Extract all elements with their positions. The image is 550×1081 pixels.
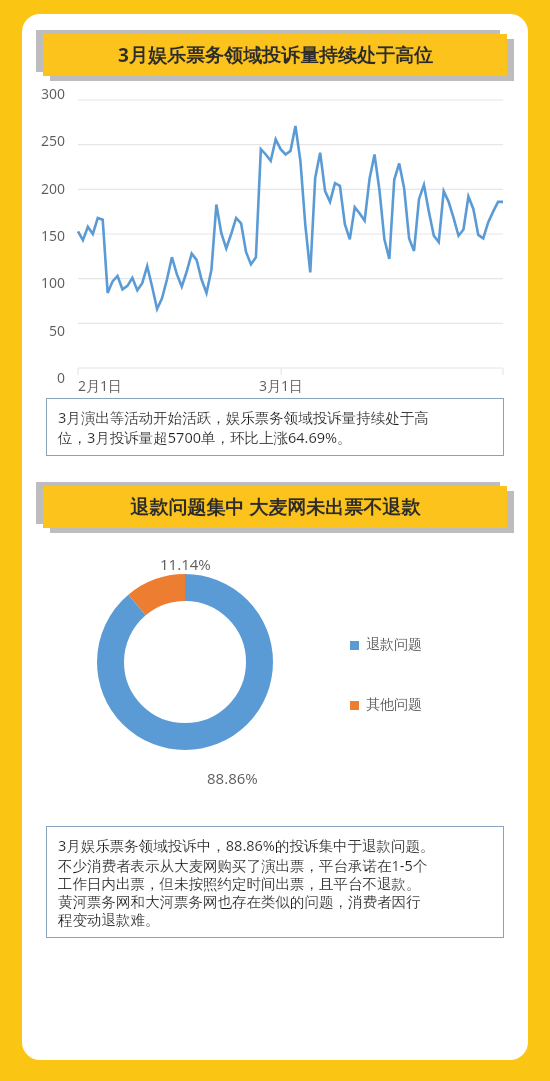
staticText: 0 xyxy=(57,368,66,384)
staticText: 150 xyxy=(41,226,66,245)
staticText: 程变动退款难。 xyxy=(58,911,160,929)
staticText: 300 xyxy=(41,84,66,103)
button[interactable]: 退款问题集中 大麦网未出票不退款 xyxy=(22,482,528,534)
button[interactable]: 其他问题 xyxy=(350,696,422,714)
staticText: 3月1日 xyxy=(259,376,304,395)
staticText: 88.86% xyxy=(207,768,258,788)
staticText: 3月娱乐票务领域投诉中，88.86%的投诉集中于退款问题。 xyxy=(58,835,435,855)
staticText: 250 xyxy=(41,131,66,150)
staticText: 3月演出等活动开始活跃，娱乐票务领域投诉量持续处于高 xyxy=(58,407,429,427)
staticText: 位，3月投诉量超5700单，环比上涨64.69%。 xyxy=(58,427,352,447)
button[interactable]: 退款问题 xyxy=(350,636,422,654)
staticText: 200 xyxy=(41,179,66,198)
staticText: 50 xyxy=(49,321,66,340)
button[interactable]: 3月娱乐票务领域投诉量持续处于高位 xyxy=(22,30,528,82)
staticText: 工作日内出票，但未按照约定时间出票，且平台不退款。 xyxy=(58,875,421,893)
staticText: 退款问题 xyxy=(366,636,422,654)
staticText: 其他问题 xyxy=(366,696,422,714)
staticText: 退款问题集中 大麦网未出票不退款 xyxy=(130,494,420,520)
staticText: 黄河票务网和大河票务网也存在类似的问题，消费者因行 xyxy=(58,893,421,911)
staticText: 3月娱乐票务领域投诉量持续处于高位 xyxy=(118,42,433,68)
staticText: 不少消费者表示从大麦网购买了演出票，平台承诺在1-5个 xyxy=(58,855,428,875)
staticText: 11.14% xyxy=(160,554,211,574)
staticText: 2月1日 xyxy=(78,376,123,395)
staticText: 100 xyxy=(41,273,66,292)
